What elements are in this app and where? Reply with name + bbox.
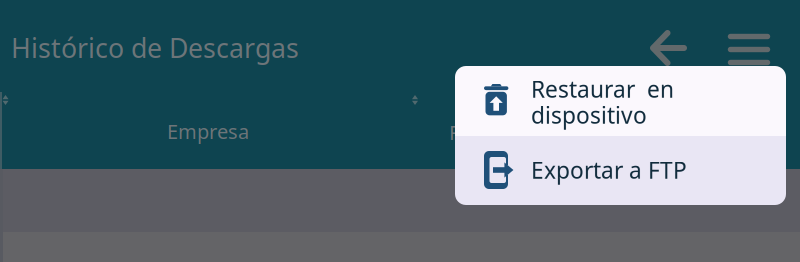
button[interactable]: Atrás <box>640 20 697 76</box>
staticText: Histórico de Descargas <box>11 30 299 65</box>
staticText: Empresa <box>167 118 249 145</box>
staticText: Exportar a FTP <box>531 155 687 185</box>
button[interactable]: Menú <box>718 24 780 75</box>
staticText: Restaurar en <box>531 74 674 104</box>
staticText: Fecha <box>449 119 503 146</box>
button[interactable]: Exportar a FTP <box>455 136 786 205</box>
staticText: dispositivo <box>531 100 647 130</box>
button[interactable]: Restaurar en <box>455 66 786 136</box>
